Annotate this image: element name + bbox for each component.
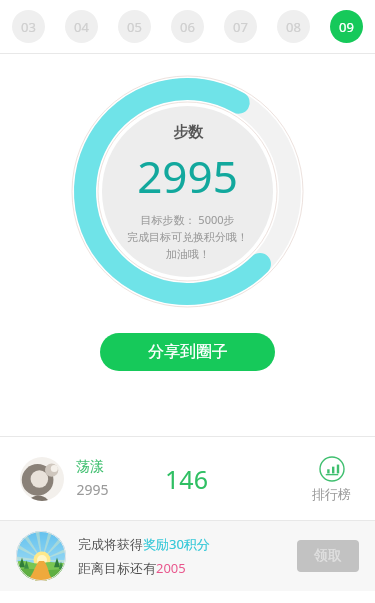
staticText: 目标步数： 5000步 (140, 212, 235, 227)
button[interactable]: 04 (65, 10, 98, 43)
staticText: 146 (165, 462, 208, 496)
button[interactable]: 排行榜 (308, 452, 355, 506)
staticText: 领取 (314, 547, 342, 565)
staticText: 2995 (137, 146, 238, 206)
staticText: 分享到圈子 (148, 342, 228, 362)
button[interactable]: 07 (224, 10, 257, 43)
button[interactable]: 09 (330, 10, 363, 43)
button[interactable]: 08 (277, 10, 310, 43)
staticText: 08 (286, 18, 301, 36)
button[interactable]: 05 (118, 10, 151, 43)
staticText: 05 (127, 18, 142, 36)
staticText: 完成目标可兑换积分哦！ (127, 230, 248, 244)
staticText: 距离目标还有2005 (78, 559, 186, 577)
staticText: 04 (74, 18, 89, 36)
staticText: 加油哦！ (166, 247, 210, 261)
staticText: 完成将获得奖励30积分 (78, 535, 210, 553)
button[interactable]: 荡漾 (0, 437, 375, 520)
button[interactable]: 领取 (297, 540, 359, 572)
staticText: 荡漾 (76, 458, 104, 476)
staticText: 步数 (173, 123, 203, 142)
staticText: 排行榜 (312, 486, 351, 502)
staticText: 2995 (76, 480, 109, 499)
button[interactable]: 06 (171, 10, 204, 43)
staticText: 09 (339, 18, 354, 36)
staticText: 07 (233, 18, 248, 36)
button[interactable]: 03 (12, 10, 45, 43)
staticText: 06 (180, 18, 195, 36)
button[interactable]: 分享到圈子 (100, 333, 275, 371)
staticText: 03 (21, 18, 36, 36)
